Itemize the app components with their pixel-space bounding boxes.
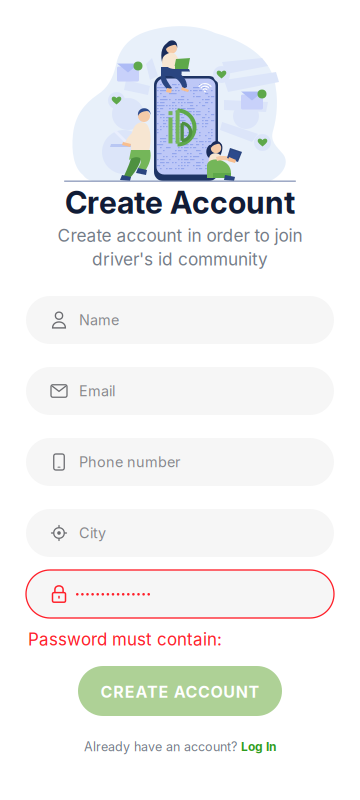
button[interactable]: CREATE ACCOUNT bbox=[78, 666, 282, 716]
button[interactable] bbox=[26, 570, 334, 618]
staticText: Email bbox=[79, 382, 115, 400]
staticText: City bbox=[79, 524, 106, 542]
button[interactable]: Email bbox=[26, 367, 334, 415]
staticText: Phone number bbox=[79, 453, 180, 471]
staticText: Already have an account? bbox=[84, 739, 237, 754]
button[interactable]: Log In bbox=[241, 739, 276, 754]
staticText: Log In bbox=[241, 739, 276, 754]
staticText: driver's id community bbox=[92, 249, 268, 270]
button[interactable]: Phone number bbox=[26, 438, 334, 486]
staticText: CREATE ACCOUNT bbox=[101, 682, 259, 702]
staticText: Name bbox=[79, 311, 119, 329]
staticText: Password must contain: bbox=[28, 629, 222, 649]
staticText: Create account in order to join bbox=[57, 225, 302, 246]
staticText: Create Account bbox=[65, 184, 295, 221]
button[interactable]: City bbox=[26, 509, 334, 557]
button[interactable]: Name bbox=[26, 296, 334, 344]
